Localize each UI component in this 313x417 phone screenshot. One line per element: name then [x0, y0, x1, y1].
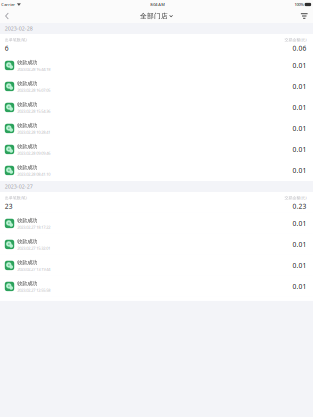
staticText: 出单笔数(笔): [5, 195, 27, 200]
staticText: 2023-02-27: [5, 183, 33, 190]
button[interactable]: 收款成功: [0, 76, 313, 97]
staticText: 2023-02-27 13:19:44: [17, 266, 50, 272]
button[interactable]: 收款成功: [0, 55, 313, 76]
button[interactable]: Back: [0, 9, 13, 23]
staticText: 2023-02-28 10:28:41: [17, 129, 50, 135]
staticText: 2023-02-28 08:41:10: [17, 171, 50, 177]
button[interactable]: 收款成功: [0, 139, 313, 160]
staticText: 交易金额(元): [285, 37, 307, 42]
staticText: 0.06: [293, 44, 307, 53]
staticText: 2023-02-28 16:44:18: [17, 66, 50, 72]
staticText: 收款成功: [17, 80, 37, 87]
staticText: 2023-02-27 18:17:22: [17, 224, 50, 230]
button[interactable]: 收款成功: [0, 213, 313, 234]
staticText: 0.01: [293, 61, 307, 70]
staticText: 收款成功: [17, 238, 37, 245]
staticText: 收款成功: [17, 59, 37, 66]
staticText: 2023-02-27 12:55:58: [17, 287, 50, 293]
staticText: 8:04 AM: [150, 2, 165, 7]
staticText: 0.23: [293, 202, 307, 211]
staticText: 0.01: [293, 261, 307, 270]
staticText: 收款成功: [17, 280, 37, 287]
staticText: 2023-02-27 15:32:01: [17, 245, 50, 251]
staticText: 交易金额(元): [285, 195, 307, 200]
staticText: 2023-02-28 09:09:46: [17, 150, 50, 156]
button[interactable]: 收款成功: [0, 97, 313, 118]
staticText: 收款成功: [17, 217, 37, 224]
staticText: 收款成功: [17, 101, 37, 108]
staticText: 23: [5, 202, 13, 211]
staticText: 全部门店: [140, 12, 168, 20]
button[interactable]: 收款成功: [0, 276, 313, 297]
staticText: 收款成功: [17, 164, 37, 171]
button[interactable]: 收款成功: [0, 160, 313, 181]
staticText: 出单笔数(笔): [5, 37, 27, 42]
staticText: 2023-02-28: [5, 25, 33, 32]
staticText: 0.01: [293, 282, 307, 291]
staticText: 6: [5, 44, 9, 53]
staticText: 0.01: [293, 82, 307, 91]
staticText: 0.01: [293, 219, 307, 228]
staticText: 0.01: [293, 145, 307, 154]
staticText: Carrier: [1, 2, 15, 7]
staticText: 收款成功: [17, 143, 37, 150]
staticText: 2023-02-28 15:54:36: [17, 108, 50, 114]
button[interactable]: 收款成功: [0, 234, 313, 255]
button[interactable]: Filter: [296, 9, 312, 23]
staticText: 0.01: [293, 103, 307, 112]
staticText: 0.01: [293, 124, 307, 133]
staticText: 0.01: [293, 240, 307, 249]
staticText: 收款成功: [17, 122, 37, 129]
button[interactable]: 收款成功: [0, 255, 313, 276]
staticText: 0.01: [293, 166, 307, 175]
staticText: 收款成功: [17, 259, 37, 266]
staticText: 100%: [294, 2, 303, 7]
staticText: 2023-02-28 16:07:05: [17, 87, 50, 93]
button[interactable]: 收款成功: [0, 118, 313, 139]
